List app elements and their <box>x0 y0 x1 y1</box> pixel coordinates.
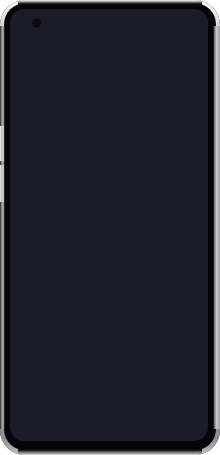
other: Phone device mockup, screen off <box>0 0 220 455</box>
